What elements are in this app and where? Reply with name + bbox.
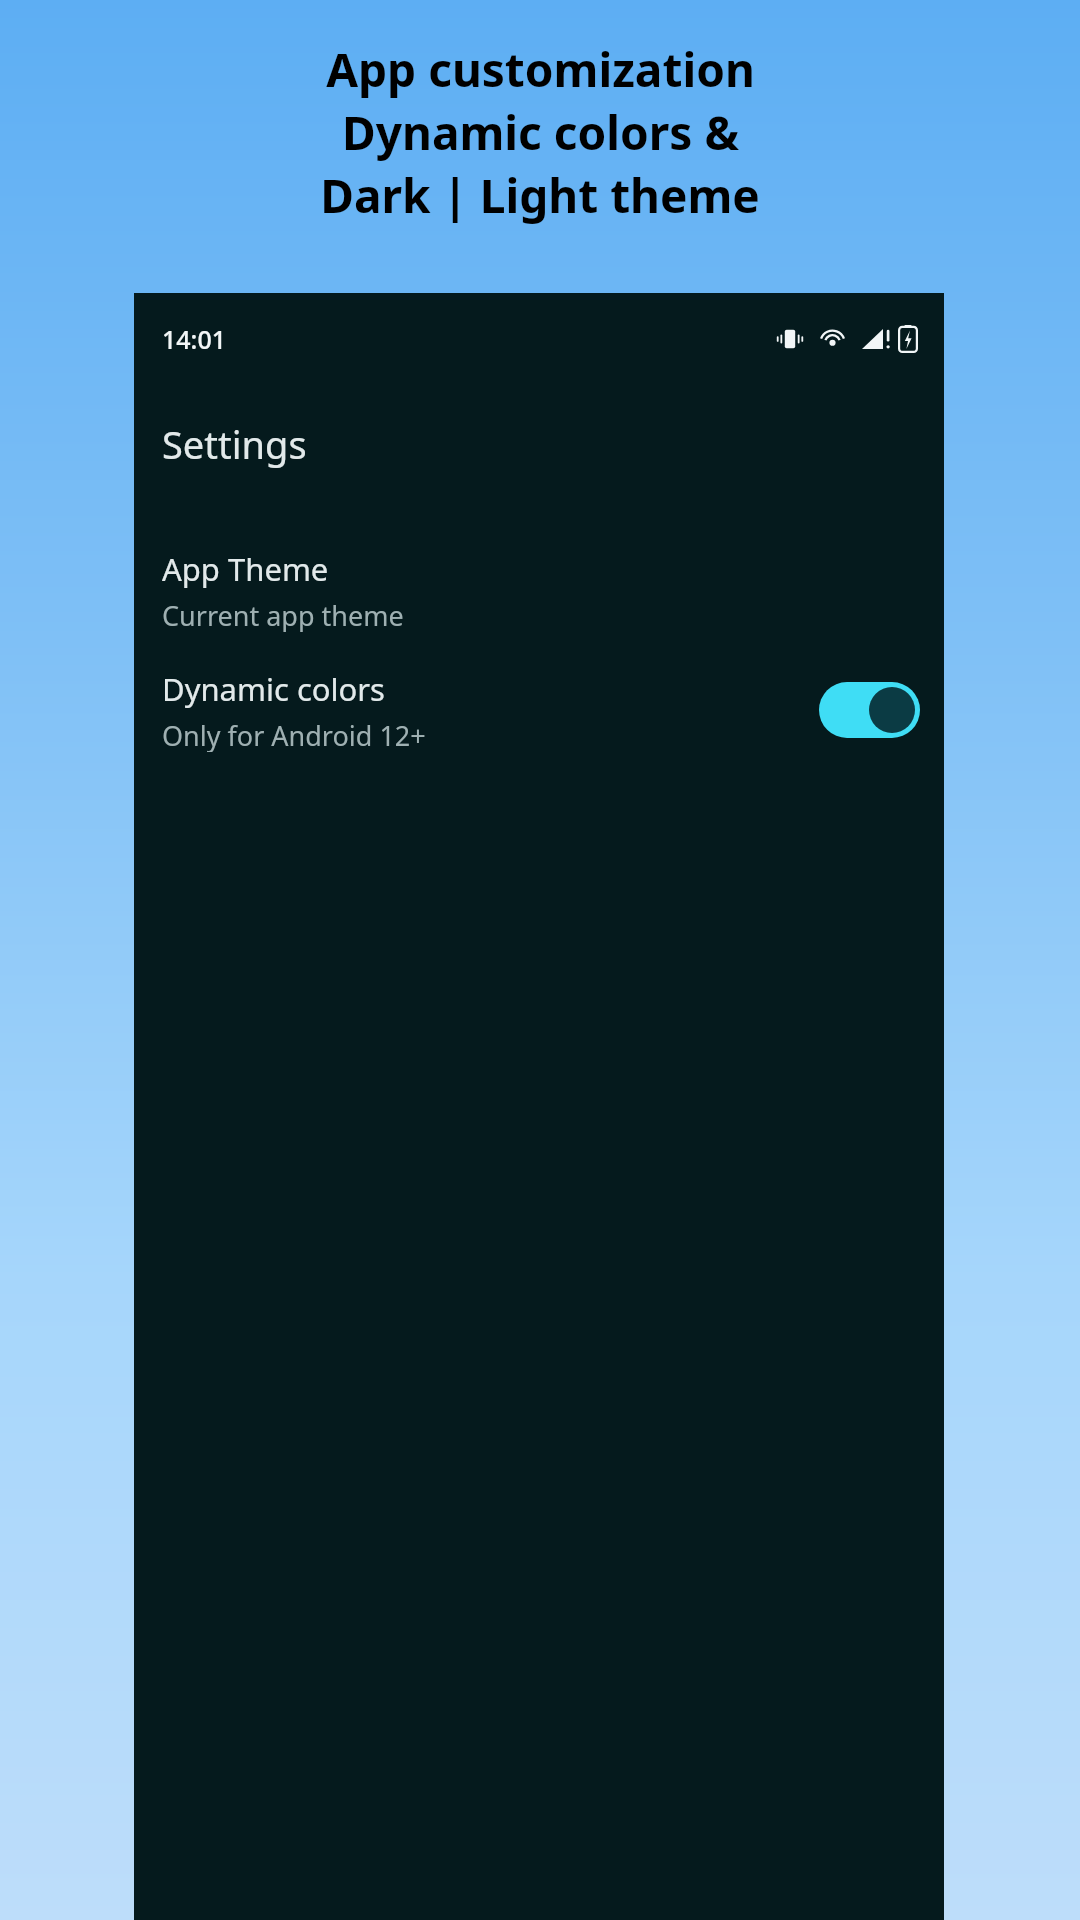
staticText: Settings [162, 418, 307, 470]
staticText: Dark | Light theme [320, 164, 760, 227]
staticText: 14:01 [162, 322, 227, 356]
button[interactable]: Dynamic colors [134, 668, 944, 752]
staticText: App Theme [162, 548, 329, 590]
staticText: Current app theme [162, 597, 404, 632]
staticText: Dynamic colors & [342, 101, 739, 164]
button[interactable]: Dynamic colors toggle [819, 682, 920, 738]
button[interactable]: App Theme [134, 548, 944, 632]
staticText: Dynamic colors [162, 668, 385, 710]
staticText: Only for Android 12+ [162, 717, 426, 752]
staticText: App customization [326, 38, 755, 101]
